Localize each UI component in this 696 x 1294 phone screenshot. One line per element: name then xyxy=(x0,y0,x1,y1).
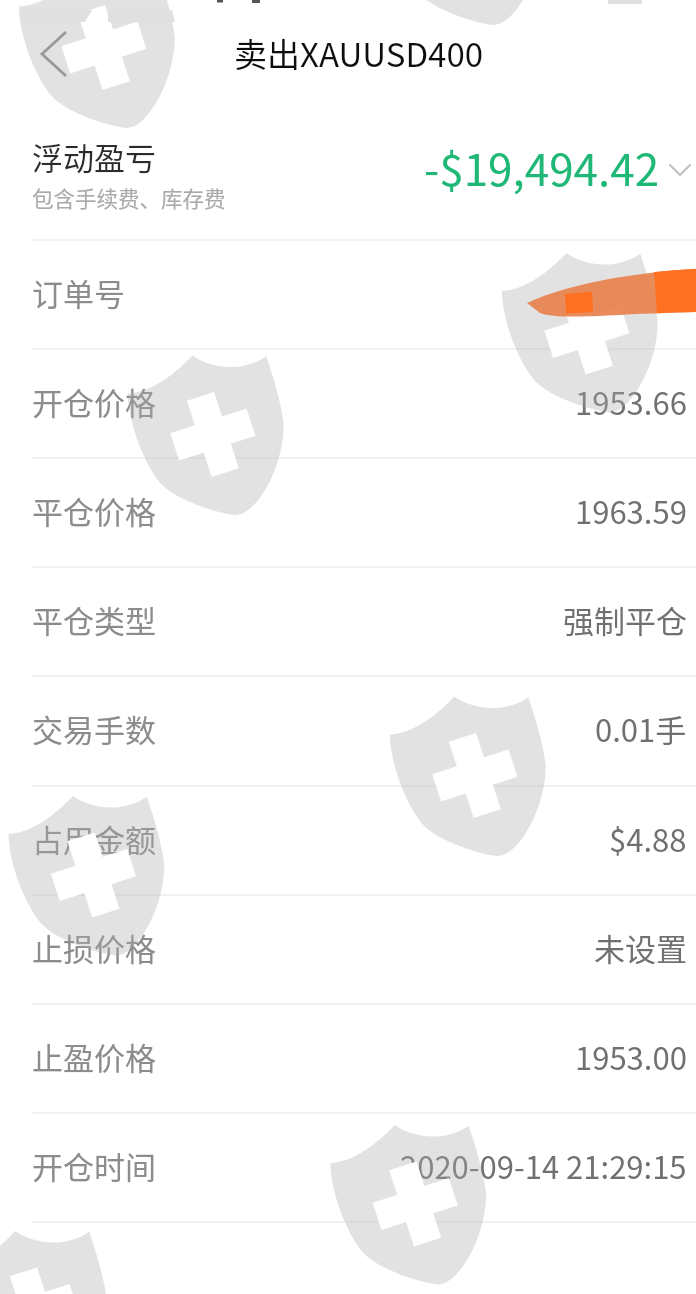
button[interactable]: 平仓价格 xyxy=(0,457,696,566)
staticText: 1953.66 xyxy=(575,379,687,424)
staticText: 1963.59 xyxy=(575,488,687,533)
staticText: 强制平仓 xyxy=(563,597,687,642)
staticText: 开仓时间 xyxy=(32,1143,156,1188)
button[interactable]: 订单号 xyxy=(0,239,696,348)
button[interactable]: 开仓价格 xyxy=(0,348,696,457)
staticText: 交易手数 xyxy=(32,706,156,751)
button[interactable]: 占用金额 xyxy=(0,785,696,894)
button[interactable]: 平仓类型 xyxy=(0,566,696,675)
button[interactable]: 开仓时间 xyxy=(0,1112,696,1221)
staticText: $4.88 xyxy=(609,816,687,861)
staticText: 包含手续费、库存费 xyxy=(32,182,226,213)
staticText: -$19,494.42 xyxy=(424,135,660,199)
staticText: 1953.00 xyxy=(575,1034,687,1079)
staticText: 平仓价格 xyxy=(32,488,156,533)
staticText: 平仓类型 xyxy=(32,597,156,642)
staticText: 占用金额 xyxy=(32,816,156,861)
staticText: 未设置 xyxy=(594,925,687,970)
button[interactable]: 交易手数 xyxy=(0,675,696,784)
staticText: 2020-09-14 21:29:15 xyxy=(400,1143,687,1188)
button[interactable]: 浮动盈亏 xyxy=(0,112,696,239)
staticText: 0.01手 xyxy=(595,706,687,751)
staticText: 卖出XAUUSD400 xyxy=(234,29,484,77)
staticText: 止盈价格 xyxy=(32,1034,156,1079)
staticText: 浮动盈亏 xyxy=(32,134,156,179)
button[interactable]: 止损价格 xyxy=(0,894,696,1003)
staticText: 止损价格 xyxy=(32,925,156,970)
staticText: 开仓价格 xyxy=(32,379,156,424)
staticText: 订单号 xyxy=(32,270,125,315)
button[interactable]: Back xyxy=(22,22,86,86)
button[interactable]: 止盈价格 xyxy=(0,1003,696,1112)
